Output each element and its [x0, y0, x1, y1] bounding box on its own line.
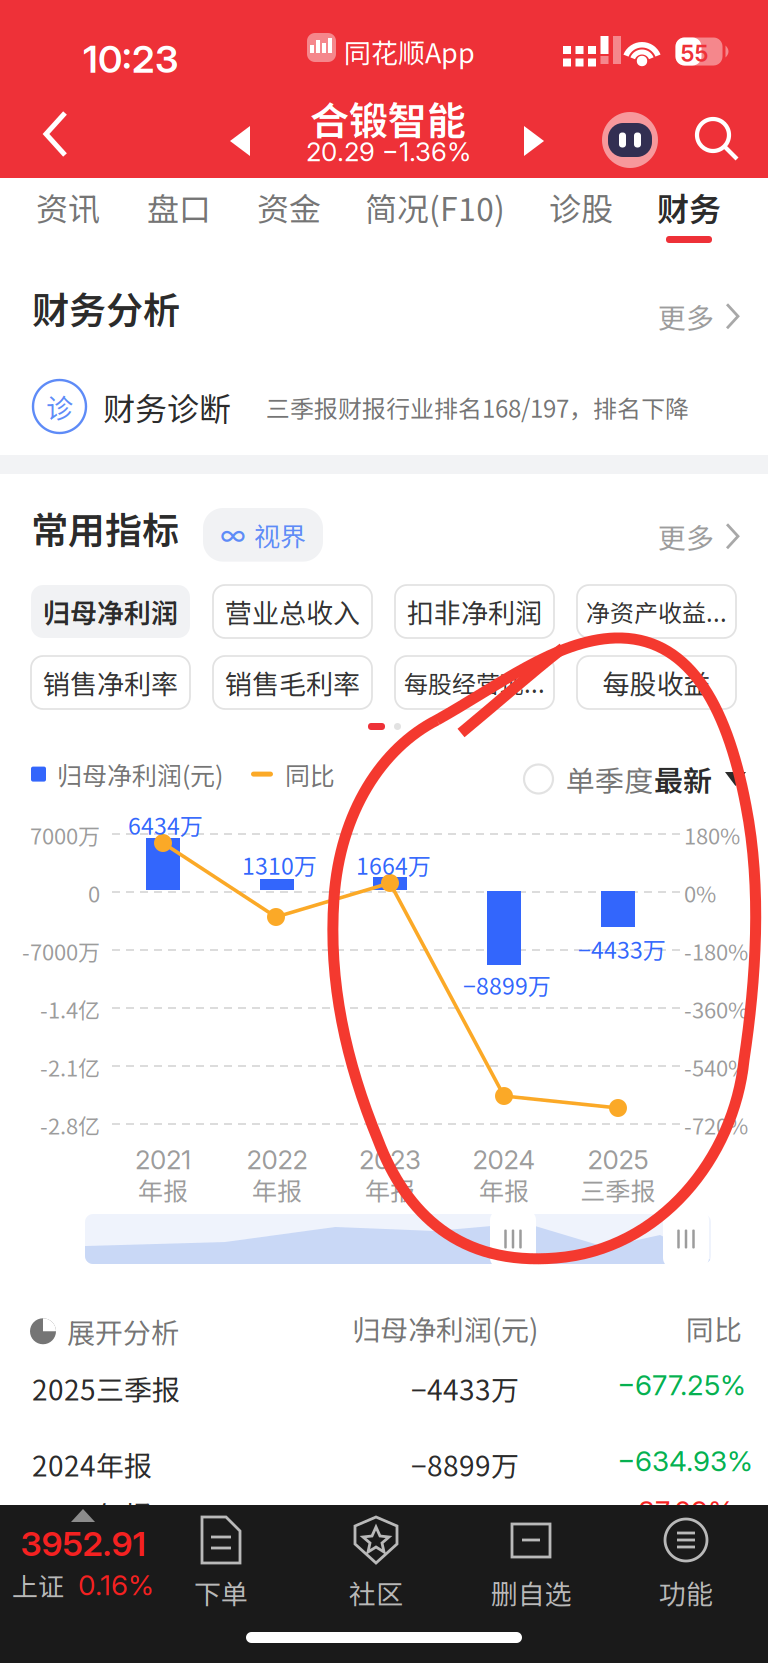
staticText: 归母净利润(元) — [57, 756, 223, 792]
staticText: 资讯 — [36, 184, 100, 230]
staticText: -720% — [684, 1109, 748, 1141]
staticText: 财务分析 — [32, 281, 180, 335]
button[interactable]: 净资产收益... — [577, 585, 736, 638]
staticText: 同花顺App — [344, 32, 475, 71]
staticText: 简况(F10) — [365, 184, 505, 230]
button[interactable]: 删自选 — [471, 1515, 591, 1612]
button[interactable]: 左滑块 — [490, 1210, 536, 1268]
button[interactable]: 展开分析 — [30, 1305, 179, 1357]
staticText: 3952.91 — [20, 1523, 145, 1564]
staticText: 归母净利润(元) — [352, 1308, 538, 1348]
staticText: 0.16% — [78, 1568, 154, 1602]
staticText: −4433万 — [411, 1368, 519, 1408]
button[interactable]: 最新 — [654, 752, 746, 806]
staticText: −87.09% — [620, 1494, 734, 1528]
button[interactable]: 上一只 — [214, 110, 266, 172]
button[interactable]: 智能助手 — [593, 103, 667, 177]
staticText: 每股收益 — [602, 663, 710, 702]
staticText: 2021 — [135, 1144, 191, 1175]
staticText: 常用指标 — [31, 501, 179, 555]
staticText: 扣非净利润 — [407, 592, 542, 631]
staticText: −677.25% — [617, 1368, 746, 1402]
staticText: 最新 — [654, 758, 712, 800]
staticText: 20.29 −1.36% — [306, 136, 471, 167]
staticText: 下单 — [194, 1573, 248, 1612]
staticText: 10:23 — [83, 36, 178, 82]
staticText: 0 — [88, 877, 100, 909]
staticText: 视界 — [254, 516, 306, 554]
staticText: 更多 — [658, 296, 714, 336]
staticText: -540% — [684, 1051, 748, 1083]
button[interactable]: 右滑块 — [663, 1210, 709, 1268]
button[interactable]: 销售毛利率 — [213, 656, 372, 709]
button[interactable]: 功能 — [626, 1515, 746, 1612]
button[interactable]: 诊股 — [539, 178, 623, 243]
staticText: 财务诊断 — [103, 384, 231, 430]
staticText: 诊股 — [549, 184, 613, 230]
staticText: -180% — [684, 935, 748, 967]
staticText: 展开分析 — [67, 1311, 179, 1351]
staticText: 2024年报 — [32, 1444, 152, 1484]
button[interactable]: 财务 — [647, 178, 731, 243]
staticText: 55 — [680, 39, 708, 67]
staticText: 2023 — [359, 1144, 421, 1175]
staticText: 1664万 — [356, 848, 431, 881]
staticText: 1310万 — [242, 848, 317, 881]
staticText: 年报 — [138, 1171, 188, 1208]
button[interactable]: 搜索 — [686, 108, 749, 171]
staticText: 更多 — [658, 516, 714, 556]
staticText: 诊 — [46, 387, 73, 426]
staticText: 净资产收益... — [586, 594, 727, 629]
button[interactable]: 每股收益 — [577, 656, 736, 709]
staticText: 资金 — [257, 184, 321, 230]
button[interactable]: 销售净利率 — [31, 656, 190, 709]
staticText: 三季报财报行业排名168/197，排名下降 — [266, 390, 689, 425]
staticText: 同比 — [285, 756, 335, 792]
button[interactable]: 简况(F10) — [355, 178, 515, 243]
button[interactable]: 更多 — [650, 508, 748, 564]
staticText: 2023年报 — [32, 1494, 152, 1534]
button[interactable]: 返回 — [24, 100, 88, 168]
staticText: 年报 — [365, 1171, 415, 1208]
button[interactable]: 资金 — [247, 178, 331, 243]
button[interactable]: 资讯 — [26, 178, 110, 243]
button[interactable]: 社区 — [316, 1515, 436, 1612]
button[interactable]: 诊 — [0, 358, 768, 454]
button[interactable]: 归母净利润 — [31, 585, 190, 638]
staticText: 2024 — [472, 1144, 535, 1175]
staticText: ∞ — [220, 518, 246, 552]
staticText: 1664万 — [414, 1494, 506, 1534]
button[interactable]: 更多 — [650, 288, 748, 344]
staticText: -360% — [684, 993, 748, 1025]
staticText: 2025三季报 — [32, 1368, 180, 1408]
button[interactable]: 营业总收入 — [213, 585, 372, 638]
staticText: -2.1亿 — [40, 1051, 100, 1083]
button[interactable]: 下一只 — [508, 110, 560, 172]
staticText: 年报 — [479, 1171, 529, 1208]
staticText: 销售毛利率 — [225, 663, 360, 702]
staticText: −8899万 — [463, 968, 551, 1001]
button[interactable]: 单季度 — [524, 752, 653, 806]
button[interactable]: 每股经营现... — [395, 656, 554, 709]
button[interactable]: 扣非净利润 — [395, 585, 554, 638]
staticText: 同比 — [686, 1308, 742, 1348]
staticText: 180% — [684, 819, 740, 851]
button[interactable]: 盘口 — [137, 178, 221, 243]
staticText: 删自选 — [490, 1573, 571, 1612]
staticText: −8899万 — [411, 1444, 519, 1484]
button[interactable]: 3952.91 — [8, 1509, 158, 1604]
staticText: 2025 — [587, 1144, 648, 1175]
staticText: −4433万 — [578, 932, 666, 965]
button[interactable]: ∞ — [203, 508, 323, 562]
staticText: 上证 — [12, 1566, 64, 1604]
staticText: 0% — [684, 877, 716, 909]
staticText: 2022 — [246, 1144, 307, 1175]
staticText: 6434万 — [128, 808, 203, 841]
button[interactable]: 下单 — [161, 1515, 281, 1612]
staticText: 财务 — [657, 184, 721, 230]
staticText: 7000万 — [30, 819, 100, 851]
staticText: 年报 — [252, 1171, 302, 1208]
staticText: 盘口 — [147, 184, 211, 230]
staticText: 每股经营现... — [404, 665, 545, 700]
staticText: 归母净利润 — [43, 592, 178, 631]
